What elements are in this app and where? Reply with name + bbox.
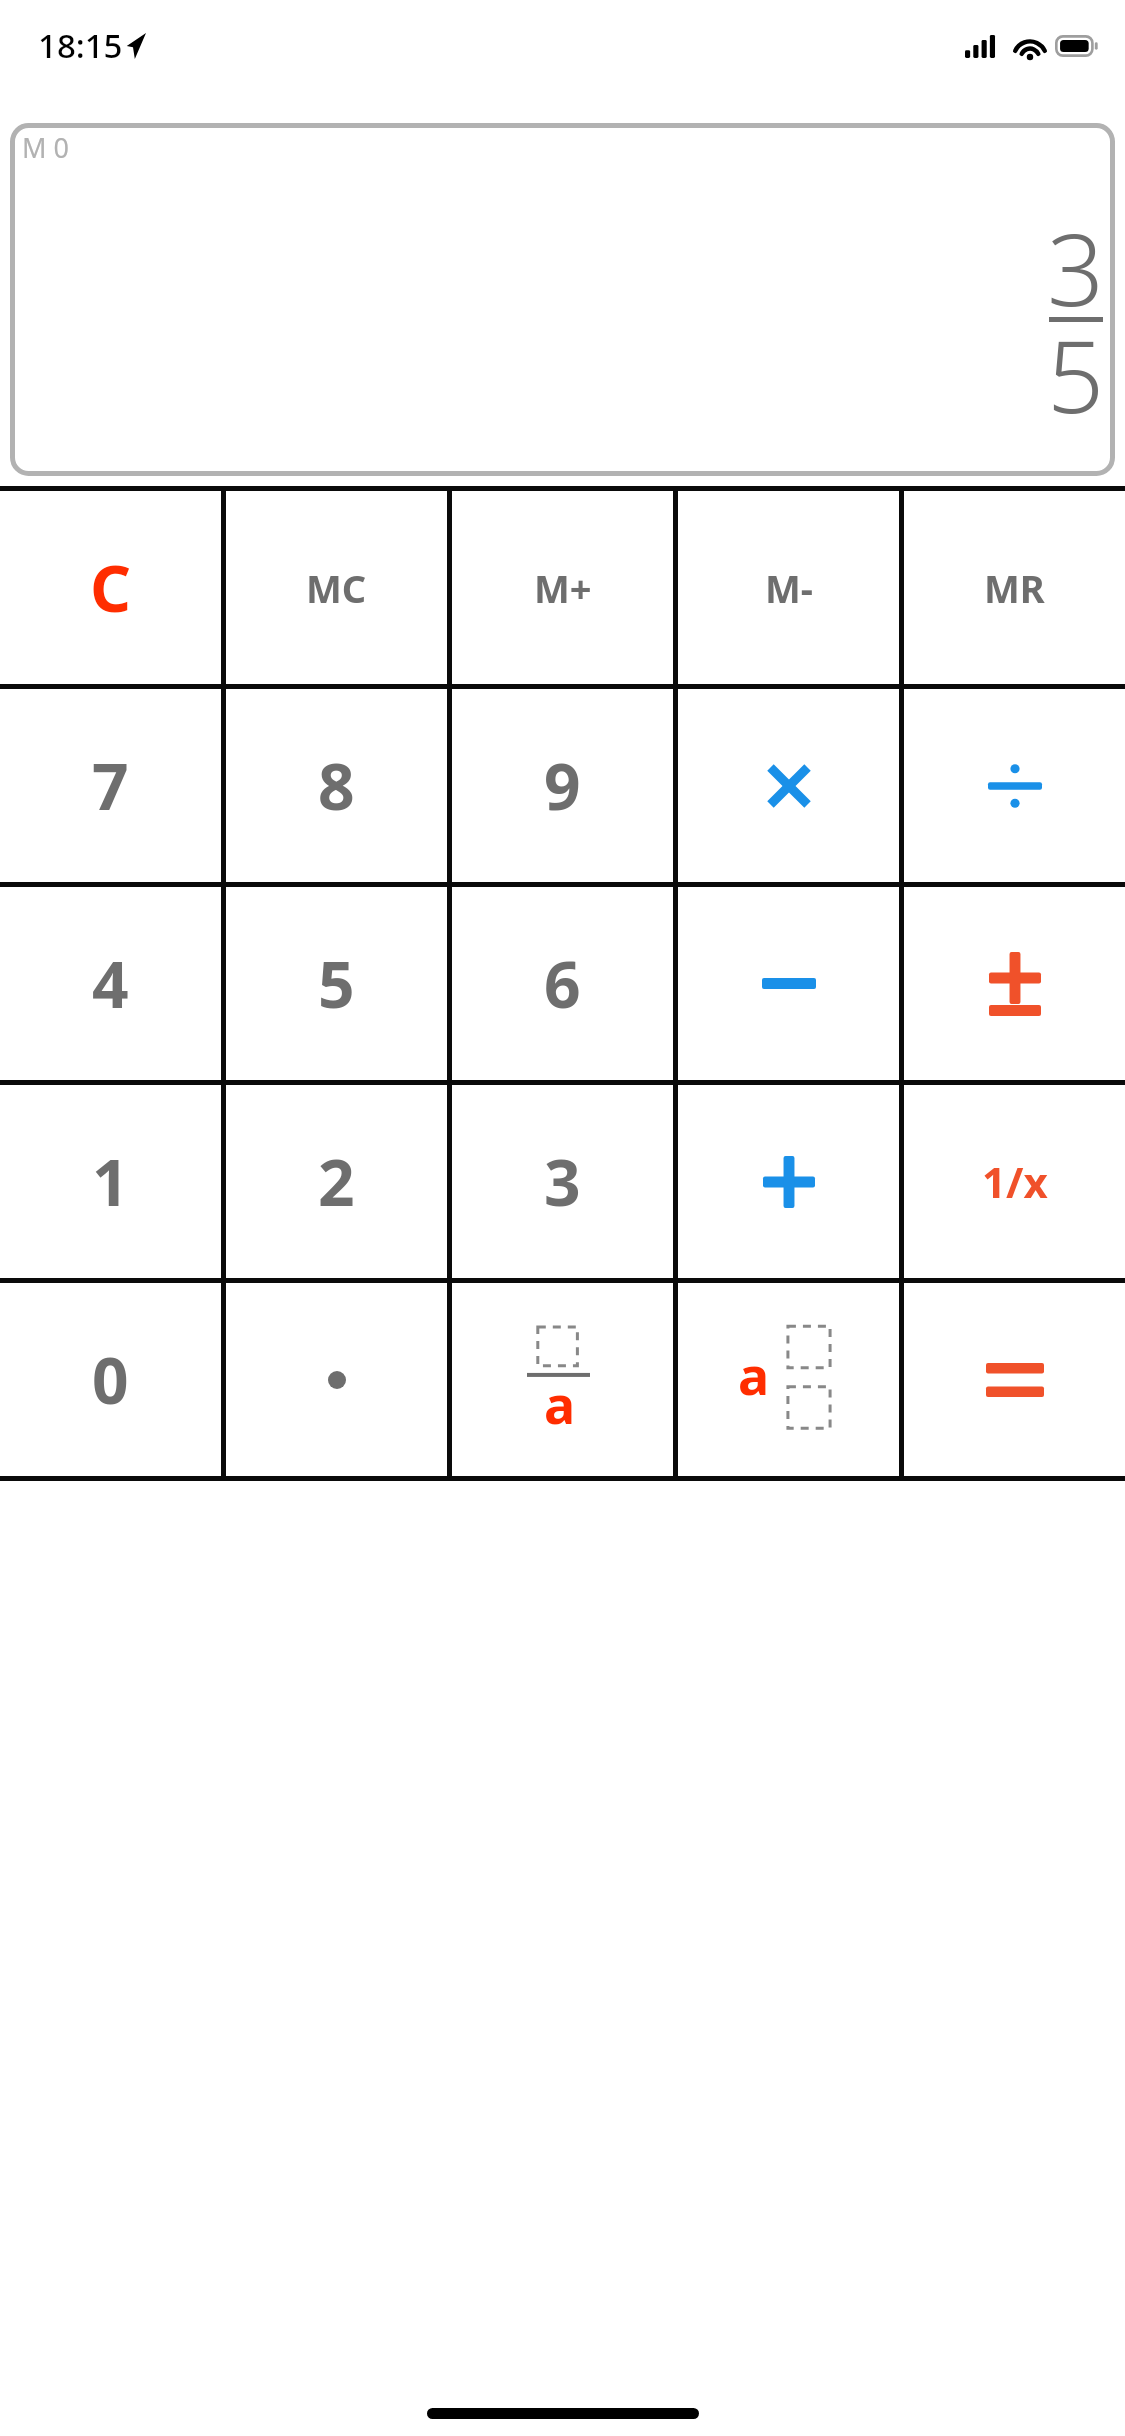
button[interactable]: MC <box>226 491 447 684</box>
staticText: 8 <box>318 742 355 829</box>
button[interactable]: 5 <box>226 887 447 1080</box>
button[interactable]: 6 <box>452 887 673 1080</box>
button[interactable]: 8 <box>226 689 447 882</box>
staticText: 1 <box>92 1138 129 1225</box>
staticText: 1/x <box>982 1153 1048 1210</box>
button[interactable]: Equals <box>904 1283 1125 1476</box>
staticText: 18:15 <box>38 23 123 68</box>
staticText: a <box>544 1368 576 1439</box>
staticText: C <box>90 544 132 631</box>
button[interactable]: Mixed fraction <box>678 1283 899 1476</box>
staticText: MR <box>984 562 1045 614</box>
staticText: 9 <box>544 742 581 829</box>
staticText: 3 <box>1047 199 1105 335</box>
button[interactable]: 1 <box>0 1085 221 1278</box>
staticText: a <box>738 1339 770 1410</box>
button[interactable]: Decimal point <box>226 1283 447 1476</box>
staticText: 4 <box>92 940 129 1027</box>
staticText: M 0 <box>22 129 69 166</box>
button[interactable]: Divide <box>904 689 1125 882</box>
button[interactable]: Simple fraction <box>452 1283 673 1476</box>
staticText: MC <box>306 562 367 614</box>
button[interactable]: MR <box>904 491 1125 684</box>
staticText: 0 <box>92 1336 129 1423</box>
button[interactable]: C <box>0 491 221 684</box>
button[interactable]: 2 <box>226 1085 447 1278</box>
staticText: M- <box>765 562 813 614</box>
staticText: 3 <box>544 1138 581 1225</box>
button[interactable]: M 0 <box>10 123 1115 476</box>
button[interactable]: M- <box>678 491 899 684</box>
button[interactable]: Multiply <box>678 689 899 882</box>
button[interactable]: 1/x <box>904 1085 1125 1278</box>
button[interactable]: 9 <box>452 689 673 882</box>
button[interactable]: 7 <box>0 689 221 882</box>
staticText: 5 <box>1047 306 1105 442</box>
button[interactable]: Plus <box>678 1085 899 1278</box>
button[interactable]: Plus minus sign <box>904 887 1125 1080</box>
button[interactable]: Minus <box>678 887 899 1080</box>
button[interactable]: 3 <box>452 1085 673 1278</box>
button[interactable]: M+ <box>452 491 673 684</box>
staticText: 6 <box>544 940 581 1027</box>
staticText: 7 <box>92 742 129 829</box>
staticText: 2 <box>318 1138 355 1225</box>
staticText: 5 <box>318 940 355 1027</box>
staticText: M+ <box>534 562 592 614</box>
button[interactable]: 4 <box>0 887 221 1080</box>
button[interactable]: 0 <box>0 1283 221 1476</box>
